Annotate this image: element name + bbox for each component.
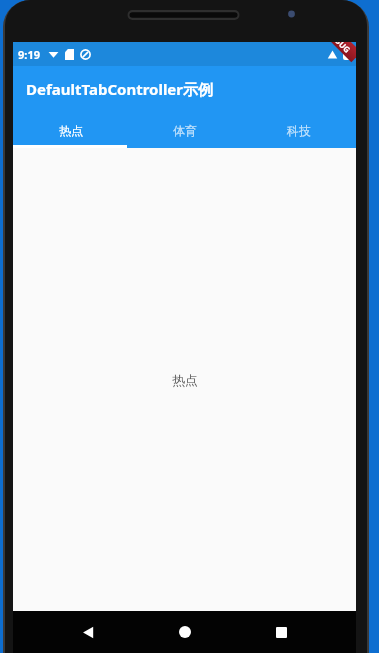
staticText: DefaultTabController示例 bbox=[26, 79, 214, 99]
staticText: 科技 bbox=[287, 123, 311, 138]
staticText: DEBUG bbox=[326, 42, 353, 55]
button[interactable]: 体育 bbox=[128, 112, 242, 148]
button[interactable]: Back bbox=[66, 611, 110, 653]
staticText: 体育 bbox=[173, 123, 197, 138]
button[interactable]: Home bbox=[163, 611, 207, 653]
staticText: 热点 bbox=[172, 372, 198, 388]
staticText: 9:19 bbox=[18, 47, 40, 62]
button[interactable]: 科技 bbox=[242, 112, 356, 148]
button[interactable]: 热点 bbox=[13, 112, 128, 148]
staticText: 热点 bbox=[59, 123, 83, 138]
button[interactable]: Recents bbox=[259, 611, 303, 653]
